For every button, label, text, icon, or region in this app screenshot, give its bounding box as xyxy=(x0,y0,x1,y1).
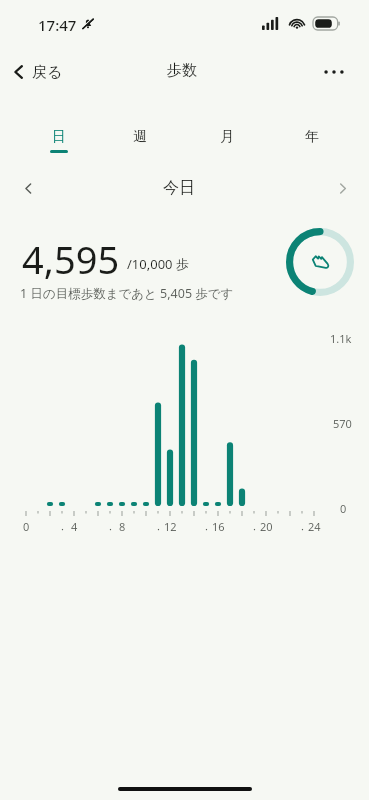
staticText: 16 xyxy=(212,519,225,534)
staticText: · xyxy=(157,521,160,535)
staticText: 戻る xyxy=(32,63,63,82)
staticText: 月 xyxy=(220,128,234,146)
staticText: 年 xyxy=(305,128,319,146)
button[interactable]: More options xyxy=(316,54,352,90)
staticText: 12 xyxy=(164,519,177,534)
staticText: · xyxy=(253,521,256,535)
staticText: 570 xyxy=(333,416,352,431)
button[interactable]: 年 xyxy=(282,118,342,158)
staticText: 4,595 xyxy=(22,233,120,285)
staticText: 17:47 xyxy=(38,15,77,35)
staticText: 日 xyxy=(52,128,66,146)
staticText: 20 xyxy=(260,519,273,534)
button[interactable]: Next day xyxy=(324,170,360,206)
staticText: · xyxy=(61,521,64,535)
staticText: · xyxy=(205,521,208,535)
button[interactable]: 月 xyxy=(197,118,257,158)
staticText: · xyxy=(301,521,304,535)
staticText: 歩数 xyxy=(167,61,197,80)
staticText: /10,000 歩 xyxy=(127,255,189,273)
staticText: 0 xyxy=(23,519,30,534)
staticText: 週 xyxy=(133,128,147,146)
staticText: 24 xyxy=(308,519,321,534)
button[interactable]: 日 xyxy=(29,118,89,158)
staticText: · xyxy=(109,521,112,535)
staticText: 4 xyxy=(71,519,78,534)
staticText: 1.1k xyxy=(330,331,352,346)
staticText: 0 xyxy=(340,501,347,516)
staticText: 今日 xyxy=(163,178,195,198)
button[interactable]: 戻る xyxy=(4,54,90,90)
button[interactable]: 週 xyxy=(110,118,170,158)
button[interactable]: Previous day xyxy=(10,170,46,206)
staticText: 1 日の目標歩数まであと 5,405 歩です xyxy=(20,285,234,302)
staticText: 8 xyxy=(119,519,126,534)
